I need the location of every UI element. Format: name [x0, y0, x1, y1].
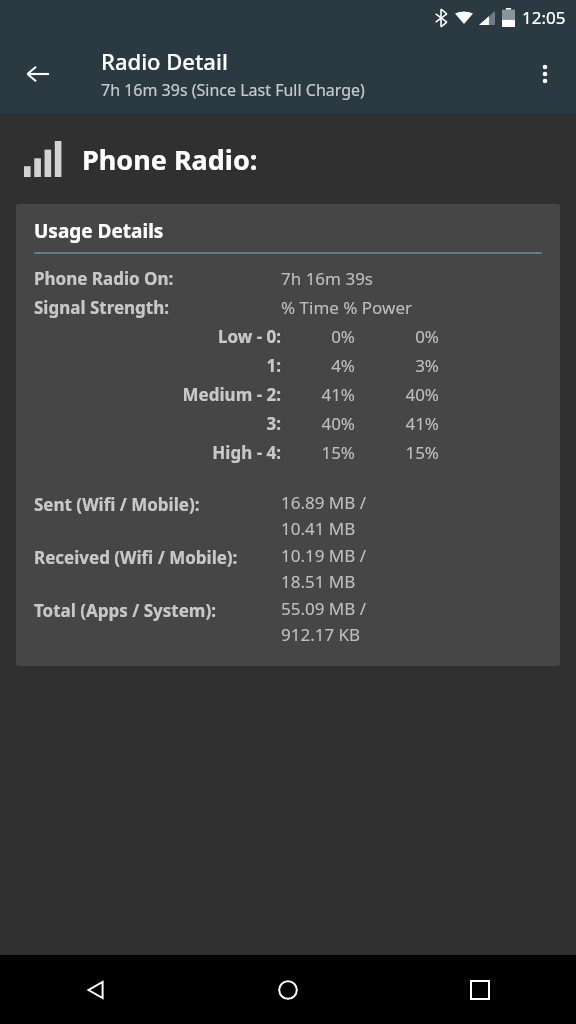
staticText: 15%	[321, 441, 355, 464]
staticText: Total (Apps / System):	[34, 599, 216, 622]
staticText: 55.09 MB /	[281, 597, 367, 620]
staticText: 15%	[405, 441, 439, 464]
staticText: 1:	[266, 354, 281, 377]
staticText: Radio Detail	[101, 46, 228, 76]
staticText: Phone Radio:	[82, 141, 258, 178]
staticText: 3:	[266, 412, 281, 435]
staticText: Low - 0:	[217, 325, 281, 348]
staticText: 18.51 MB	[281, 570, 356, 593]
button[interactable]: Recent apps	[384, 955, 576, 1024]
staticText: 40%	[405, 383, 439, 406]
button[interactable]: Home	[192, 955, 384, 1024]
staticText: % Time % Power	[281, 296, 413, 319]
staticText: High - 4:	[212, 441, 281, 464]
staticText: 10.41 MB	[281, 517, 356, 540]
staticText: 7h 16m 39s	[281, 267, 374, 290]
button[interactable]: More options	[519, 48, 571, 100]
staticText: 12:05	[522, 6, 566, 29]
staticText: 40%	[321, 412, 355, 435]
staticText: 0%	[331, 325, 355, 348]
staticText: Phone Radio On:	[34, 267, 174, 290]
button[interactable]: Back	[10, 46, 66, 102]
staticText: 41%	[405, 412, 439, 435]
staticText: 16.89 MB /	[281, 491, 367, 514]
staticText: 10.19 MB /	[281, 544, 367, 567]
staticText: Signal Strength:	[34, 296, 170, 319]
staticText: Medium - 2:	[182, 383, 281, 406]
staticText: 912.17 KB	[281, 623, 361, 646]
staticText: Usage Details	[34, 218, 164, 244]
button[interactable]: Back	[0, 955, 192, 1024]
staticText: 0%	[415, 325, 439, 348]
staticText: 4%	[331, 354, 355, 377]
staticText: 7h 16m 39s (Since Last Full Charge)	[101, 79, 365, 101]
staticText: 41%	[321, 383, 355, 406]
staticText: Received (Wifi / Mobile):	[34, 546, 238, 569]
staticText: 3%	[415, 354, 439, 377]
staticText: Sent (Wifi / Mobile):	[34, 493, 200, 516]
button[interactable]: Usage Details	[16, 204, 560, 666]
